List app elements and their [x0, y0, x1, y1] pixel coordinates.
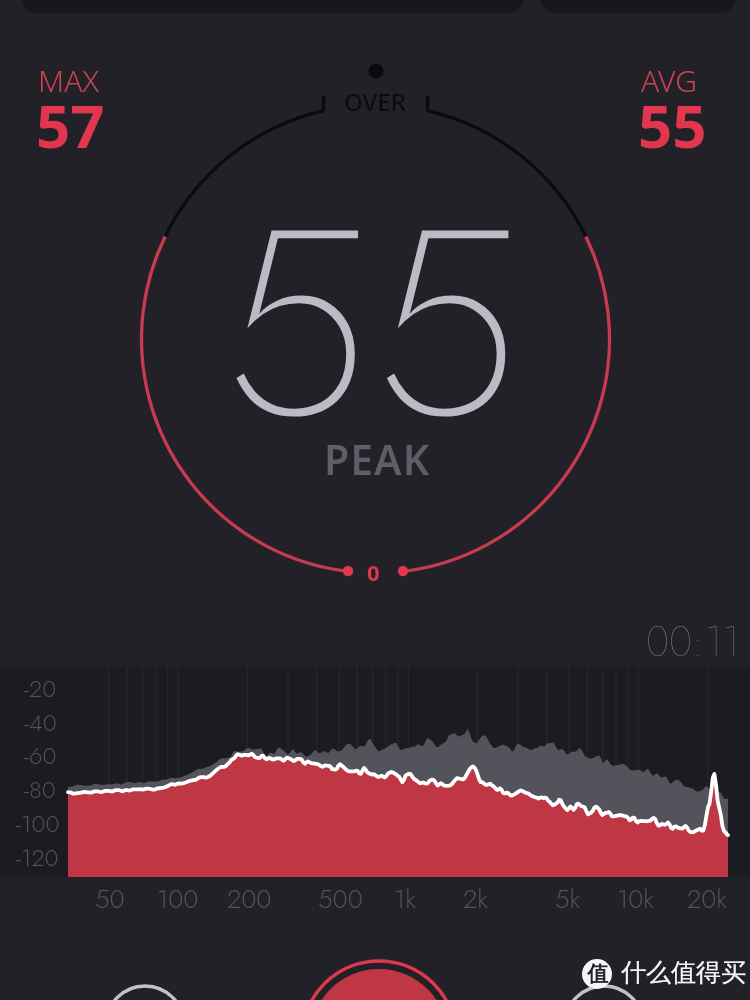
staticText: 值 [587, 961, 608, 987]
staticText: 55 [638, 84, 707, 166]
staticText: -20 [24, 671, 57, 706]
staticText: 55 [224, 134, 525, 513]
button[interactable]: Settings [565, 986, 643, 1000]
staticText: 2k [463, 880, 488, 918]
staticText: 57 [36, 84, 105, 166]
staticText: -120 [16, 840, 59, 875]
staticText: 100 [157, 880, 199, 918]
staticText: AVG [641, 60, 697, 101]
staticText: 0 [367, 557, 380, 587]
staticText: 什么值得买 [621, 957, 746, 988]
staticText: OVER [344, 85, 406, 118]
staticText: 5k [555, 880, 581, 918]
staticText: 20k [687, 880, 728, 918]
staticText: 200 [227, 880, 272, 918]
button[interactable]: Record [302, 961, 456, 1000]
button[interactable]: Reset [106, 986, 184, 1000]
staticText: -80 [24, 772, 56, 807]
staticText: MAX [38, 60, 99, 101]
staticText: 50 [95, 880, 125, 918]
staticText: 500 [318, 880, 363, 918]
staticText: PEAK [324, 431, 431, 487]
staticText: 00:11 [646, 611, 740, 672]
staticText: -60 [24, 738, 57, 773]
staticText: -100 [16, 806, 60, 841]
staticText: 10k [617, 880, 655, 918]
staticText: 1k [394, 880, 417, 918]
staticText: -40 [24, 705, 57, 740]
